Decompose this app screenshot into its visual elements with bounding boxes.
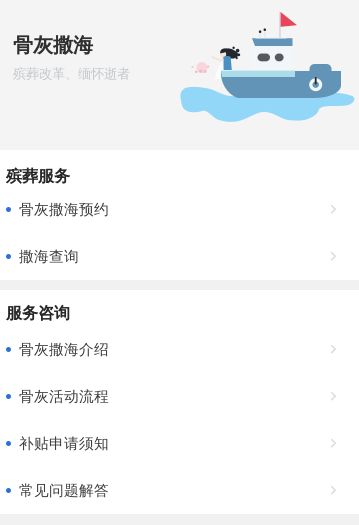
staticText: 服务咨询 — [6, 303, 70, 323]
staticText: 撒海查询 — [19, 247, 79, 265]
button[interactable]: 撒海查询 — [0, 233, 359, 280]
button[interactable]: 常见问题解答 — [0, 467, 359, 514]
button[interactable]: 补贴申请须知 — [0, 420, 359, 467]
staticText: 骨灰活动流程 — [19, 387, 109, 405]
staticText: 补贴申请须知 — [19, 434, 109, 452]
staticText: 殡葬服务 — [6, 166, 70, 186]
staticText: 骨灰撒海 — [13, 33, 93, 58]
button[interactable]: 骨灰撒海预约 — [0, 186, 359, 233]
staticText: 常见问题解答 — [19, 481, 109, 499]
staticText: 骨灰撒海预约 — [19, 200, 109, 218]
staticText: 殡葬改革、缅怀逝者 — [13, 66, 130, 82]
button[interactable]: 骨灰撒海介绍 — [0, 326, 359, 373]
staticText: 骨灰撒海介绍 — [19, 340, 109, 358]
button[interactable]: 骨灰活动流程 — [0, 373, 359, 420]
